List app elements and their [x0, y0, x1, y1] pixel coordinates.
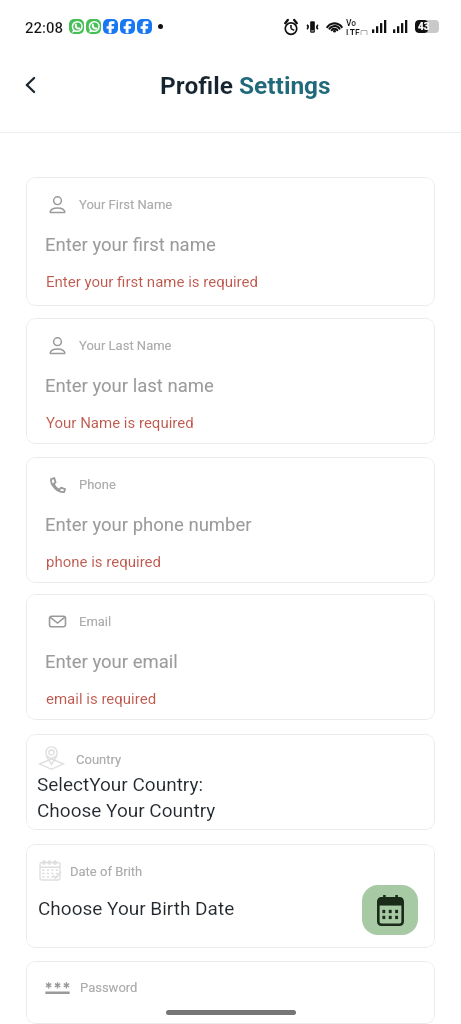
button[interactable]: Password: [26, 961, 435, 1024]
staticText: Profile: [160, 71, 233, 100]
staticText: Country: [76, 752, 122, 767]
staticText: Enter your last name: [45, 375, 214, 397]
staticText: Choose Your Country: [37, 799, 216, 821]
staticText: LTE□: [346, 28, 368, 35]
staticText: Date of Brith: [70, 864, 143, 879]
button[interactable]: Back: [10, 65, 50, 105]
button[interactable]: Your First Name: [26, 177, 435, 306]
staticText: Your Last Name: [79, 338, 172, 353]
staticText: Phone: [79, 477, 116, 492]
staticText: Enter your first name: [45, 234, 216, 256]
staticText: Your Name is required: [46, 414, 194, 432]
button[interactable]: Email: [26, 594, 435, 720]
staticText: SelectYour Country:: [37, 773, 204, 795]
staticText: Settings: [239, 71, 331, 100]
button[interactable]: Pick date: [362, 885, 418, 935]
staticText: Choose Your Birth Date: [38, 897, 235, 919]
staticText: Your First Name: [79, 197, 173, 212]
staticText: Enter your email: [45, 651, 178, 673]
button[interactable]: Date of Brith: [26, 844, 435, 948]
staticText: Password: [80, 980, 138, 995]
button[interactable]: Your Last Name: [26, 318, 435, 444]
staticText: Enter your phone number: [45, 514, 252, 536]
staticText: Enter your first name is required: [46, 273, 258, 291]
staticText: Vo: [346, 18, 357, 28]
staticText: Email: [79, 614, 112, 629]
staticText: email is required: [46, 690, 157, 708]
staticText: 43: [418, 21, 430, 33]
staticText: phone is required: [46, 553, 162, 571]
staticText: 22:08: [25, 19, 64, 37]
button[interactable]: Country: [26, 734, 435, 830]
button[interactable]: Phone: [26, 457, 435, 583]
